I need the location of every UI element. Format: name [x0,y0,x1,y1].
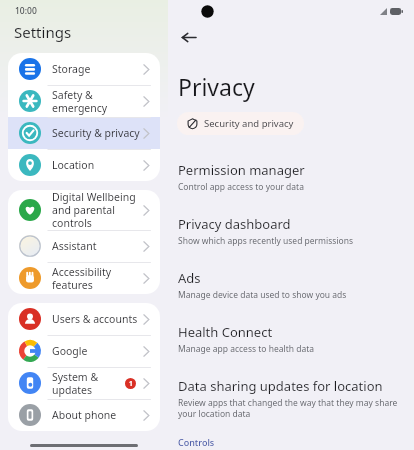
staticText: Manage app access to health data [178,343,315,355]
button[interactable]: About phone [8,399,160,431]
button[interactable]: System & updates [8,367,160,399]
staticText: Privacy [178,71,255,102]
staticText: Manage device data used to show you ads [178,289,347,301]
button[interactable]: Safety & emergency [8,85,160,117]
staticText: Privacy dashboard [178,215,291,233]
staticText: Digital Wellbeing and parental controls [52,190,140,230]
button[interactable]: Assistant [8,230,160,262]
staticText: Data sharing updates for location [178,377,383,395]
staticText: Google [52,344,140,358]
staticText: Controls [178,436,215,448]
staticText: Health Connect [178,323,273,341]
staticText: Location [52,158,140,172]
staticText: Accessibility features [52,265,140,292]
button[interactable]: Security & privacy [8,117,160,149]
button[interactable]: Health Connect [168,317,414,361]
staticText: Review apps that changed the way that th… [178,397,400,419]
staticText: Assistant [52,239,140,253]
staticText: Storage [52,62,140,76]
staticText: Ads [178,269,201,287]
button[interactable]: Accessibility features [8,262,160,294]
button[interactable]: Ads [168,263,414,307]
staticText: Settings [14,22,72,42]
staticText: 1 [129,379,133,388]
button[interactable]: Security and privacy [177,112,304,135]
staticText: Show which apps recently used permission… [178,235,354,247]
button[interactable]: Back [175,24,201,50]
staticText: System & updates [52,370,125,397]
button[interactable]: Google [8,335,160,367]
staticText: 10:00 [15,5,37,17]
button[interactable]: Users & accounts [8,303,160,335]
staticText: Permission manager [178,161,305,179]
button[interactable]: Storage [8,53,160,85]
staticText: Users & accounts [52,312,140,326]
staticText: Control app access to your data [178,181,304,193]
staticText: About phone [52,408,140,422]
staticText: Security & privacy [52,126,140,140]
staticText: Security and privacy [204,117,294,130]
button[interactable]: Privacy dashboard [168,209,414,253]
button[interactable]: Data sharing updates for location [168,371,414,425]
button[interactable]: Permission manager [168,155,414,199]
staticText: Safety & emergency [52,88,140,115]
button[interactable]: Location [8,149,160,181]
button[interactable]: Digital Wellbeing and parental controls [8,190,160,230]
